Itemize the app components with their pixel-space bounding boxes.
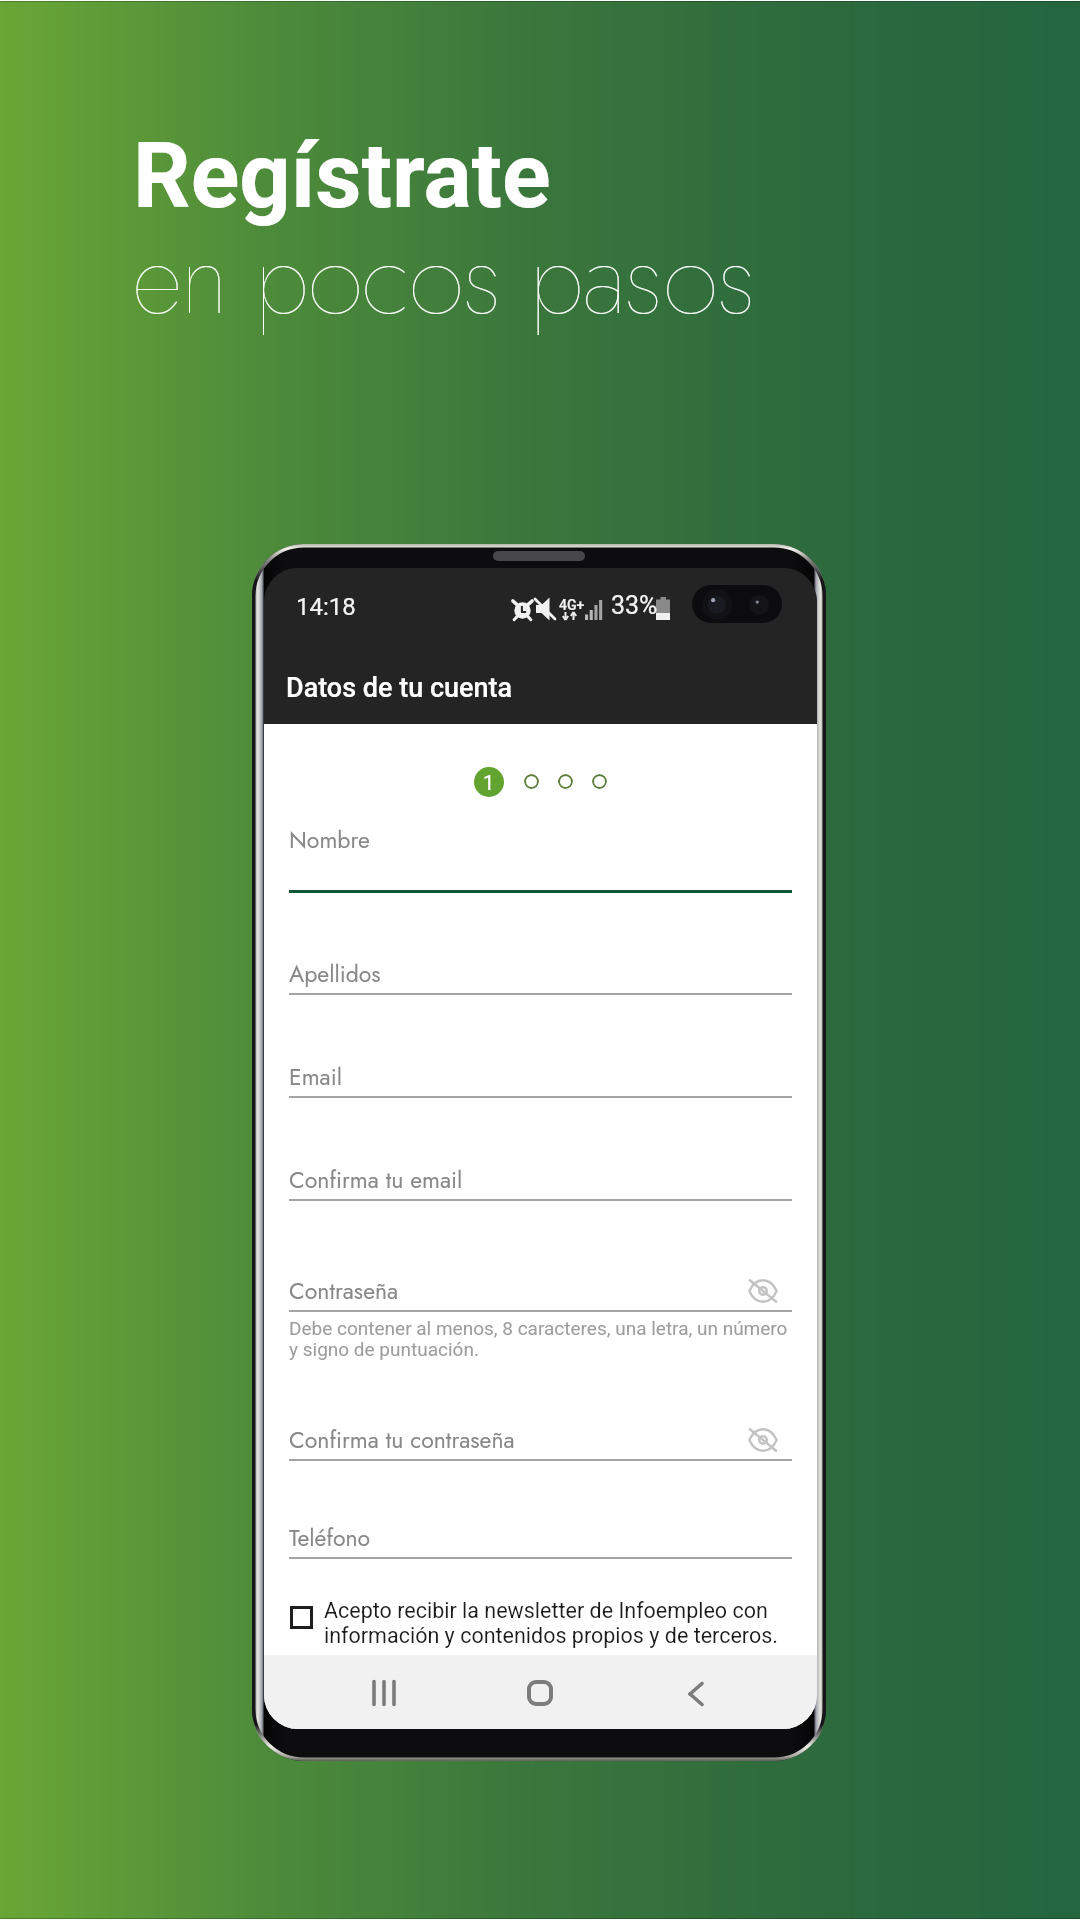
button[interactable]: [592, 774, 607, 789]
staticText: en pocos pasos: [132, 206, 756, 351]
staticText: 1: [483, 771, 495, 794]
staticText: Acepto recibir la newsletter de Infoempl…: [324, 1598, 778, 1648]
staticText: 4G+: [559, 597, 585, 613]
button[interactable]: Inicio: [517, 1670, 563, 1716]
staticText: Contraseña: [289, 1274, 399, 1307]
staticText: Datos de tu cuenta: [286, 672, 513, 704]
button[interactable]: [524, 774, 539, 789]
staticText: Confirma tu email: [289, 1163, 463, 1196]
button[interactable]: [558, 774, 573, 789]
staticText: Email: [289, 1060, 342, 1093]
button[interactable]: Aplicaciones recientes: [361, 1670, 407, 1716]
staticText: Apellidos: [289, 957, 381, 990]
button[interactable]: Mostrar contraseña: [745, 1273, 781, 1309]
staticText: Teléfono: [289, 1521, 371, 1554]
button[interactable]: Mostrar contraseña: [745, 1422, 781, 1458]
button[interactable]: Acepto recibir la newsletter de Infoempl…: [290, 1598, 800, 1648]
staticText: Nombre: [289, 823, 370, 856]
staticText: Regístrate: [133, 124, 551, 229]
staticText: 14:18: [296, 593, 356, 621]
button[interactable]: 1: [474, 767, 504, 797]
button[interactable]: Atrás: [673, 1671, 719, 1717]
staticText: 33%: [611, 591, 658, 620]
staticText: Confirma tu contraseña: [289, 1423, 515, 1456]
staticText: Debe contener al menos, 8 caracteres, un…: [289, 1317, 788, 1361]
